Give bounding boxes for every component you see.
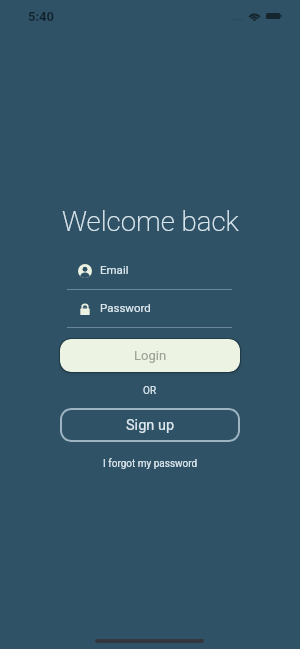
staticText: Welcome back [62,205,239,237]
other: Wi-Fi [248,11,261,21]
button[interactable]: Sign up [60,408,240,442]
staticText: Password [100,301,151,314]
staticText: Login [134,348,167,363]
other: Battery [266,13,282,19]
button[interactable]: Password [67,296,232,328]
staticText: Sign up [126,417,175,434]
staticText: 5:40 [28,9,55,24]
button[interactable]: I forgot my password [97,455,204,473]
staticText: Email [100,263,129,276]
button[interactable]: Login [60,339,240,372]
staticText: I forgot my password [103,458,198,470]
button[interactable]: Email [67,258,232,290]
other: Cellular signal [231,17,245,22]
staticText: OR [143,385,157,397]
